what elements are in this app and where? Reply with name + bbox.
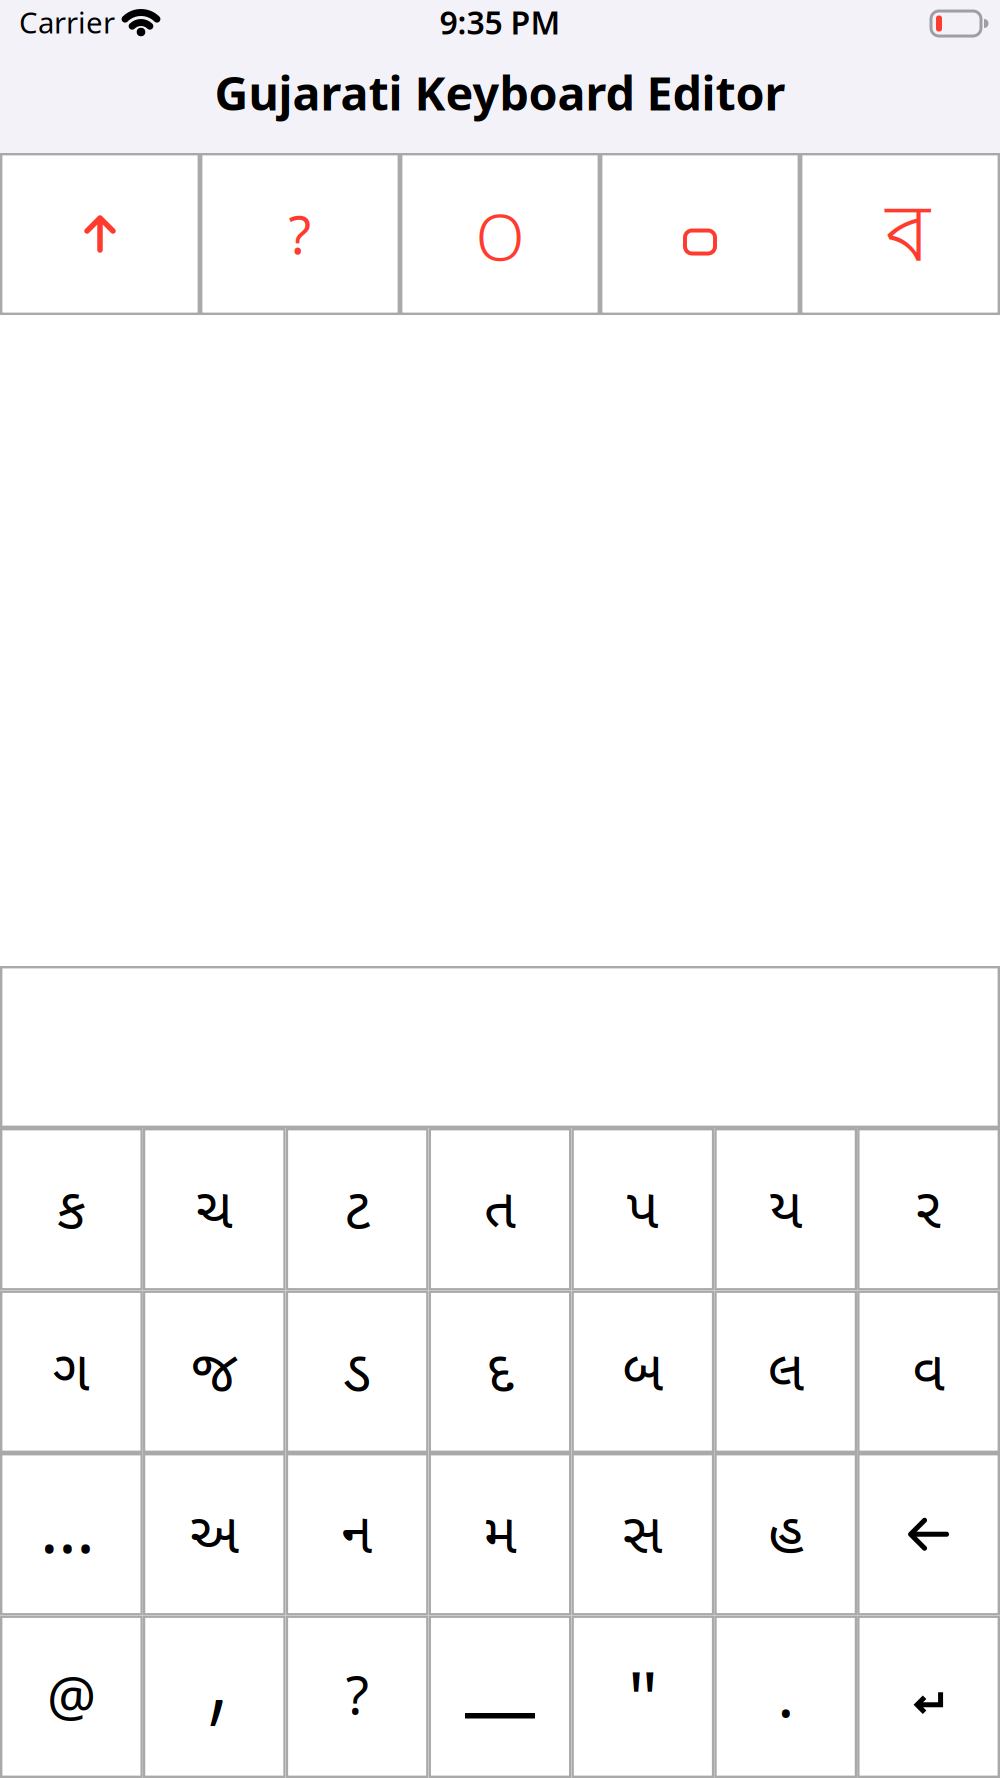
button[interactable]: " <box>571 1615 714 1778</box>
staticText: ર <box>916 1168 941 1244</box>
staticText: ગ <box>53 1331 90 1407</box>
staticText: ડ <box>344 1331 371 1407</box>
button[interactable]: ગ <box>0 1290 143 1453</box>
staticText: મ <box>483 1493 516 1569</box>
staticText: ? <box>346 1658 369 1729</box>
button[interactable]: , <box>143 1615 286 1778</box>
staticText: લ <box>768 1331 804 1407</box>
button[interactable]: O <box>400 153 600 315</box>
staticText: દ <box>487 1331 513 1407</box>
button[interactable]: @ <box>0 1615 143 1778</box>
button[interactable]: સ <box>571 1453 714 1615</box>
button[interactable]: Shift <box>0 153 200 315</box>
button[interactable]: હ <box>714 1453 857 1615</box>
staticText: " <box>628 1647 658 1746</box>
staticText: સ <box>623 1493 663 1569</box>
button[interactable]: ટ <box>286 1128 429 1290</box>
button[interactable]: ય <box>714 1128 857 1290</box>
button[interactable]: બ <box>571 1290 714 1453</box>
button[interactable]: જ <box>143 1290 286 1453</box>
button[interactable]: ચ <box>143 1128 286 1290</box>
button[interactable]: ન <box>286 1453 429 1615</box>
button[interactable]: Return <box>857 1615 1000 1778</box>
button[interactable]: Ba <box>800 153 1000 315</box>
button[interactable]: અ <box>143 1453 286 1615</box>
staticText: 9:35 PM <box>439 1 560 43</box>
staticText: અ <box>190 1493 239 1569</box>
staticText: @ <box>47 1658 96 1731</box>
button[interactable]: Key shape <box>600 153 800 315</box>
button[interactable]: Delete <box>857 1453 1000 1615</box>
staticText: , <box>206 1603 230 1741</box>
staticText: ત <box>484 1168 516 1244</box>
staticText: Gujarati Keyboard Editor <box>214 61 785 123</box>
button[interactable]: વ <box>857 1290 1000 1453</box>
staticText: ব <box>885 182 930 294</box>
staticText: ક <box>57 1168 86 1244</box>
staticText: ટ <box>345 1168 370 1244</box>
button[interactable]: Question mark <box>200 153 400 315</box>
staticText: . <box>777 1650 794 1735</box>
staticText: વ <box>913 1331 945 1407</box>
button[interactable]: મ <box>429 1453 571 1615</box>
staticText: હ <box>768 1493 803 1569</box>
staticText: બ <box>622 1331 663 1407</box>
staticText: O <box>475 193 524 278</box>
button[interactable]: દ <box>429 1290 571 1453</box>
staticText: ય <box>769 1168 802 1244</box>
staticText: જ <box>191 1331 237 1407</box>
button[interactable]: . <box>714 1615 857 1778</box>
staticText: ? <box>288 199 311 269</box>
button[interactable]: Space <box>429 1615 571 1778</box>
staticText: ચ <box>196 1168 233 1244</box>
button[interactable]: ? <box>286 1615 429 1778</box>
button[interactable]: ક <box>0 1128 143 1290</box>
button[interactable]: ર <box>857 1128 1000 1290</box>
button[interactable]: … <box>0 1453 143 1615</box>
button[interactable]: ત <box>429 1128 571 1290</box>
staticText: … <box>40 1480 95 1572</box>
staticText: પ <box>627 1168 659 1244</box>
button[interactable]: ડ <box>286 1290 429 1453</box>
staticText: Carrier <box>19 2 115 41</box>
button[interactable]: લ <box>714 1290 857 1453</box>
staticText: ન <box>342 1493 373 1569</box>
button[interactable]: પ <box>571 1128 714 1290</box>
